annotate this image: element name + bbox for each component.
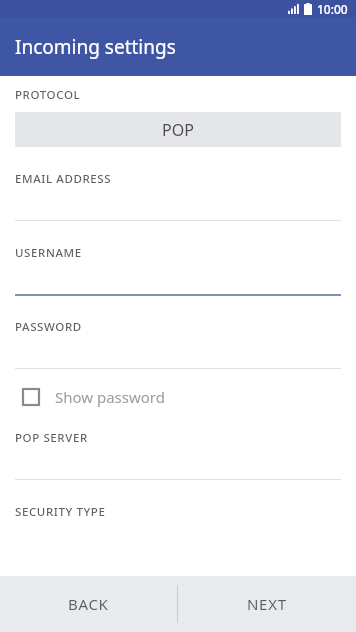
staticText: 10:00 [317,1,348,17]
staticText: USERNAME [15,245,82,261]
staticText: PROTOCOL [15,87,81,103]
staticText: SECURITY TYPE [15,504,106,520]
staticText: POP SERVER [15,430,88,446]
staticText: BACK [68,594,109,614]
staticText: Incoming settings [15,34,176,60]
staticText: PASSWORD [15,319,82,335]
staticText: POP [162,119,194,141]
button[interactable]: BACK [0,576,177,632]
button[interactable]: POP [15,112,341,147]
button[interactable]: NEXT [178,576,356,632]
staticText: EMAIL ADDRESS [15,171,112,187]
staticText: Show password [55,387,165,407]
button[interactable]: Show password [15,381,341,413]
staticText: NEXT [247,594,287,614]
